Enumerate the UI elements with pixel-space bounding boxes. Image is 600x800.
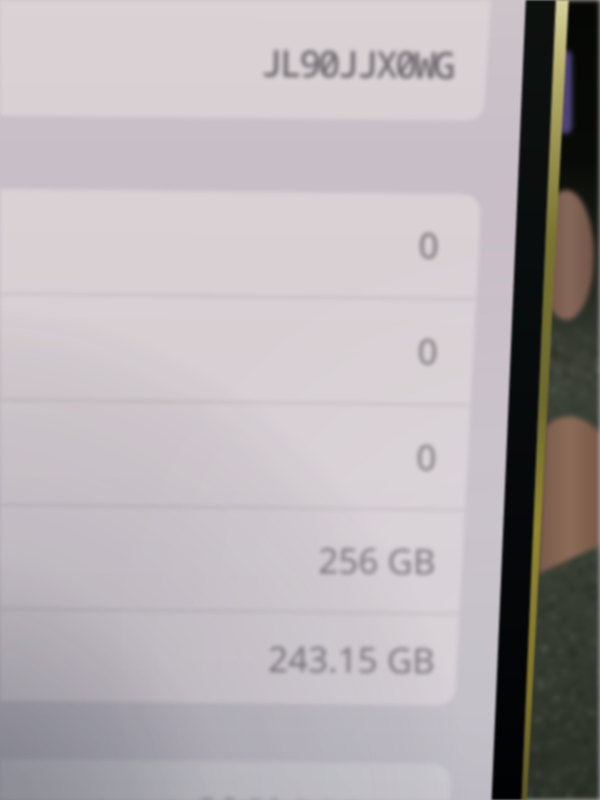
- staticText: 0: [418, 221, 440, 269]
- button[interactable]: 0: [0, 188, 480, 298]
- staticText: 0: [417, 327, 439, 375]
- staticText: 5C:52:D0:21: [197, 787, 383, 800]
- button[interactable]: 243.15 GB: [0, 609, 476, 706]
- staticText: 243.15 GB: [268, 635, 435, 684]
- staticText: JL90JJX0WG: [260, 36, 453, 89]
- button[interactable]: 256 GB: [0, 505, 477, 613]
- staticText: 256 GB: [318, 536, 436, 585]
- staticText: 0: [416, 433, 438, 481]
- button[interactable]: 0: [0, 294, 479, 404]
- button[interactable]: 0: [0, 400, 478, 509]
